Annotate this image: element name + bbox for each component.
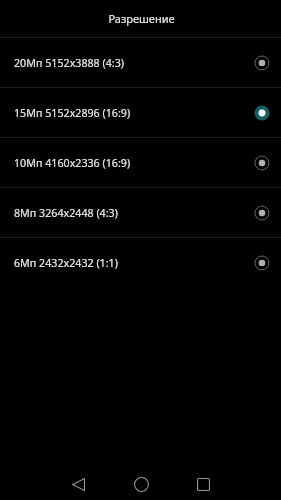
button[interactable]: 10Mп 4160x2336 (16:9) bbox=[0, 138, 281, 187]
button[interactable]: Home bbox=[117, 462, 165, 500]
staticText: 15Mп 5152x2896 (16:9) bbox=[14, 106, 254, 121]
staticText: Разрешение bbox=[108, 11, 175, 26]
button[interactable]: 20Mп 5152x3888 (4:3) bbox=[0, 38, 281, 87]
button[interactable]: 15Mп 5152x2896 (16:9) bbox=[0, 88, 281, 137]
staticText: 20Mп 5152x3888 (4:3) bbox=[14, 56, 254, 71]
staticText: 10Mп 4160x2336 (16:9) bbox=[14, 156, 254, 171]
button[interactable]: Recents bbox=[179, 462, 227, 500]
staticText: 8Mп 3264x2448 (4:3) bbox=[14, 206, 254, 221]
button[interactable]: Back bbox=[54, 462, 102, 500]
button[interactable]: 8Mп 3264x2448 (4:3) bbox=[0, 188, 281, 237]
button[interactable]: 6Mп 2432x2432 (1:1) bbox=[0, 238, 281, 287]
staticText: 6Mп 2432x2432 (1:1) bbox=[14, 256, 254, 271]
